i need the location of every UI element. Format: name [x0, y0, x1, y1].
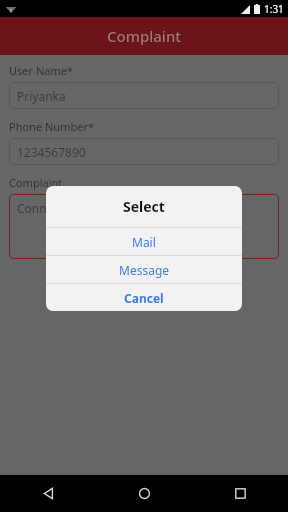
- staticText: Phone Number*: [9, 119, 94, 134]
- staticText: User Name*: [9, 63, 73, 78]
- staticText: Mail: [132, 234, 156, 250]
- button[interactable]: Cancel: [46, 284, 242, 311]
- staticText: Priyanka: [17, 88, 66, 104]
- button[interactable]: 1234567890: [9, 138, 279, 165]
- button[interactable]: Connection problem: [9, 194, 279, 259]
- staticText: Cancel: [124, 290, 164, 306]
- staticText: 1234567890: [17, 144, 86, 160]
- staticText: Select: [123, 197, 165, 216]
- button[interactable]: Message: [46, 256, 242, 283]
- staticText: Complaint: [107, 26, 182, 46]
- button[interactable]: Recent apps: [192, 475, 288, 512]
- button[interactable]: Back: [0, 475, 96, 512]
- staticText: Connection problem: [17, 200, 133, 216]
- button[interactable]: Priyanka: [9, 82, 279, 109]
- staticText: Message: [119, 262, 170, 278]
- button[interactable]: Mail: [46, 228, 242, 255]
- staticText: 1:31: [264, 2, 284, 16]
- staticText: Complaint: [9, 175, 63, 190]
- button[interactable]: Home: [96, 475, 192, 512]
